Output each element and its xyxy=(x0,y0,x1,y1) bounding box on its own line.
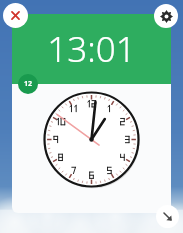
button[interactable]: Remove widget xyxy=(3,3,28,28)
button[interactable]: Resize widget xyxy=(156,205,179,228)
button[interactable]: Settings xyxy=(154,4,178,28)
button[interactable]: 13:01 xyxy=(12,14,171,213)
button[interactable] xyxy=(43,91,140,188)
staticText: 13:01 xyxy=(47,25,136,73)
staticText: 12 xyxy=(24,79,33,89)
button[interactable]: 13:01 xyxy=(12,14,171,84)
button[interactable]: 12 xyxy=(18,74,38,94)
